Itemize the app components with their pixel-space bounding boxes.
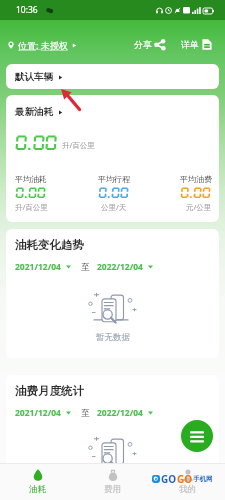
button[interactable]: 默认车辆 [6, 64, 219, 89]
staticText: 公里/天 [101, 202, 127, 212]
staticText: 油耗 [29, 484, 46, 495]
button[interactable]: 油耗 [0, 464, 75, 500]
staticText: 油费月度统计 [15, 384, 84, 398]
staticText: 2022/12/04 [97, 261, 143, 273]
staticText: 最新油耗 [15, 106, 53, 118]
button[interactable]: Menu [181, 420, 213, 452]
staticText: 位置: 未授权 [18, 39, 68, 51]
staticText: 默认车辆 [15, 71, 53, 83]
staticText: 分享 [134, 39, 152, 50]
staticText: 暂无数据 [96, 476, 130, 487]
staticText: 至 [81, 262, 90, 273]
staticText: 元/公里 [186, 202, 212, 212]
staticText: 平均行程 [98, 174, 130, 184]
staticText: 升/百公里 [15, 202, 48, 212]
staticText: 油耗变化趋势 [15, 238, 84, 252]
button[interactable]: 最新油耗 [15, 106, 63, 118]
button[interactable]: 2021/12/04 [15, 404, 71, 422]
button[interactable]: 位置: 未授权 [7, 35, 77, 55]
staticText: GO [177, 472, 193, 486]
staticText: 详单 [181, 39, 199, 50]
staticText: GO [161, 472, 177, 486]
staticText: 2021/12/04 [15, 261, 61, 273]
staticText: 2021/12/04 [15, 407, 61, 419]
staticText: 平均油费 [180, 174, 212, 184]
staticText: 升/百公里 [62, 140, 95, 150]
staticText: 平均油耗 [15, 174, 47, 184]
button[interactable]: 分享 [132, 35, 168, 54]
staticText: 2022/12/04 [97, 407, 143, 419]
staticText: 费用 [104, 484, 121, 495]
button[interactable]: 2022/12/04 [97, 404, 153, 422]
staticText: 10:36 [16, 4, 38, 16]
button[interactable]: 详单 [179, 35, 214, 54]
staticText: 暂无数据 [96, 332, 130, 343]
staticText: 我的 [179, 484, 196, 495]
button[interactable]: 2022/12/04 [97, 258, 153, 276]
button[interactable]: 费用 [75, 464, 150, 500]
button[interactable]: 我的 [150, 464, 225, 500]
staticText: 手机网 [193, 475, 213, 483]
button[interactable]: 2021/12/04 [15, 258, 71, 276]
staticText: 至 [81, 408, 90, 419]
